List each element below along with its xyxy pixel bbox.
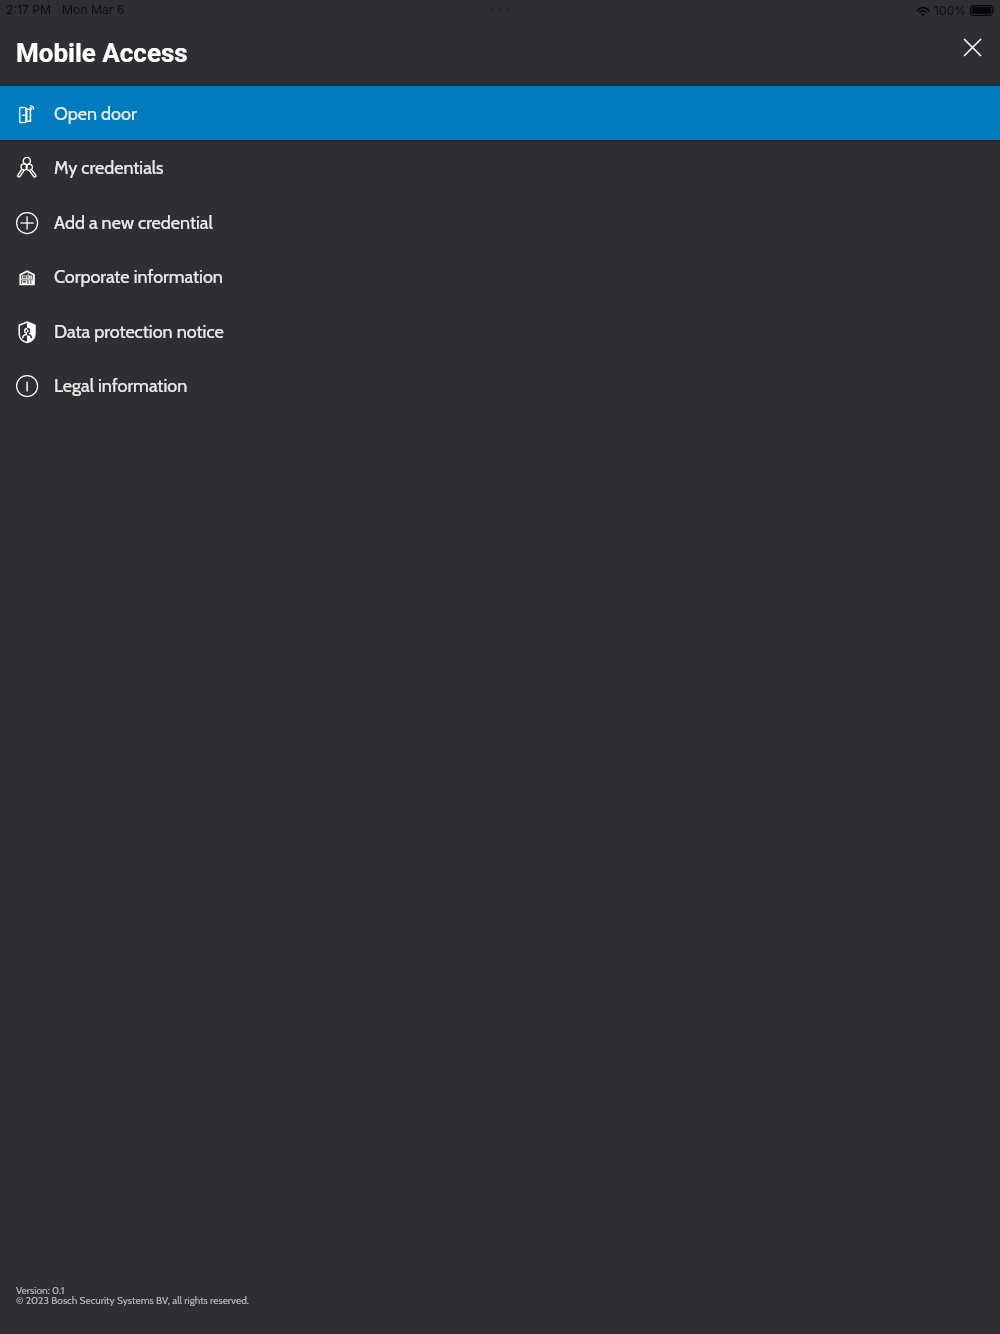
staticText: Mobile Access [16,38,188,68]
button[interactable]: Data protection notice [0,304,1000,359]
staticText: Data protection notice [54,321,224,343]
staticText: 100% [934,3,967,18]
button[interactable]: My credentials [0,140,1000,195]
button[interactable]: Open door [0,86,1000,141]
button[interactable]: Legal information [0,358,1000,413]
staticText: 2:17 PM [6,2,52,17]
staticText: My credentials [54,157,164,179]
button[interactable]: Close [950,25,994,69]
staticText: Corporate information [54,266,223,288]
staticText: Mon Mar 6 [62,2,125,17]
button[interactable]: Add a new credential [0,195,1000,250]
staticText: Add a new credential [54,212,213,234]
staticText: Open door [54,103,137,125]
button[interactable]: Corporate information [0,249,1000,304]
staticText: Version: 0.1 © 2023 Bosch Security Syste… [16,1284,249,1306]
staticText: Legal information [54,375,188,397]
